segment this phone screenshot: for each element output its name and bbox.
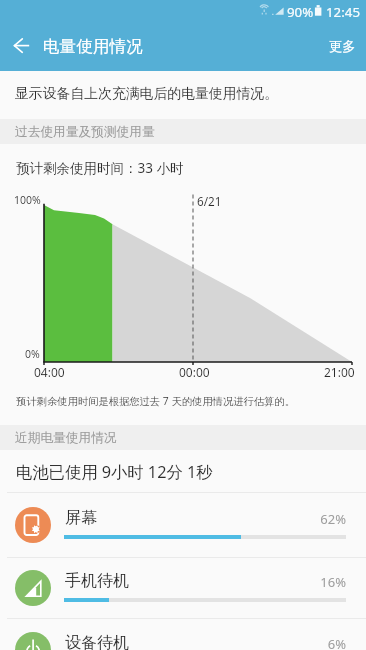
button[interactable]: 更多 [316, 22, 366, 71]
button[interactable]: Back [0, 22, 44, 71]
staticText: 预计剩余使用时间是根据您过去 7 天的使用情况进行估算的。 [16, 394, 295, 408]
staticText: 电量使用情况 [43, 36, 143, 57]
staticText: 显示设备自上次充满电后的电量使用情况。 [15, 85, 279, 102]
staticText: 6/21 [197, 193, 222, 209]
button[interactable]: 设备待机 [0, 618, 366, 650]
button[interactable]: 屏幕 [0, 492, 366, 557]
staticText: 04:00 [34, 364, 65, 380]
staticText: 屏幕 [65, 508, 97, 528]
staticText: 过去使用量及预测使用量 [15, 124, 155, 140]
staticText: 0% [25, 347, 40, 361]
staticText: 00:00 [179, 364, 210, 380]
staticText: 62% [240, 510, 346, 528]
staticText: 100% [14, 193, 41, 207]
staticText: 电池已使用 9小时 12分 1秒 [16, 461, 213, 483]
staticText: 6% [240, 635, 346, 650]
staticText: 21:00 [324, 364, 355, 380]
staticText: 近期电量使用情况 [15, 430, 117, 446]
staticText: 预计剩余使用时间：33 小时 [16, 159, 184, 177]
staticText: 12:45 [326, 3, 360, 21]
staticText: 90% [287, 3, 314, 21]
staticText: 16% [240, 573, 346, 591]
staticText: 设备待机 [65, 633, 129, 650]
staticText: 手机待机 [65, 571, 129, 591]
button[interactable]: 手机待机 [0, 557, 366, 618]
staticText: 更多 [329, 38, 356, 55]
